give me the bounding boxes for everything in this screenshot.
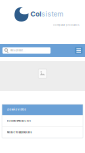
staticText: sistem	[41, 10, 63, 18]
button[interactable]: Menu	[75, 47, 82, 54]
staticText: NUESTROS PRODUCTOS	[6, 120, 30, 122]
button[interactable]: NUESTROS PRODUCTOS	[2, 116, 83, 127]
staticText: PRODUCTOS DESTACADOS	[6, 131, 31, 134]
staticText: Col	[30, 10, 41, 18]
staticText: Find a product...	[10, 49, 26, 52]
button[interactable]: PRODUCTOS DESTACADOS	[2, 127, 83, 138]
staticText: LOS MÁS VISTOS	[6, 108, 25, 111]
staticText: Comparar productos	[53, 23, 79, 27]
button[interactable]: Find a product...	[2, 47, 50, 54]
button[interactable]: LOS MÁS VISTOS	[2, 104, 83, 115]
